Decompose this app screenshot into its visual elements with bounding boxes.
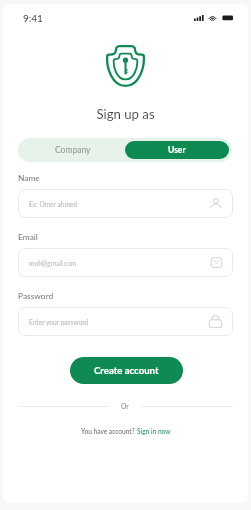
staticText: 9:41 (23, 12, 43, 24)
staticText: Name (18, 173, 40, 183)
other: Email (211, 257, 222, 268)
other: Name (210, 198, 222, 210)
button[interactable]: Company (21, 141, 125, 159)
other: Password (209, 315, 222, 328)
staticText: Create account (94, 365, 159, 377)
button[interactable]: Sign in now (137, 427, 171, 435)
staticText: Company (55, 145, 91, 155)
staticText: Sign up as (0, 106, 251, 122)
staticText: moh@gmail.com (29, 259, 77, 267)
button[interactable]: moh@gmail.com (18, 248, 233, 277)
staticText: User (168, 145, 186, 155)
staticText: You have account? (81, 427, 137, 435)
button[interactable]: Ex: Omer ahmed (18, 189, 233, 218)
button[interactable]: User (125, 141, 229, 159)
staticText: Password (18, 291, 54, 301)
staticText: Or (121, 402, 129, 410)
staticText: Ex: Omer ahmed (29, 200, 78, 208)
button[interactable]: Enter your password (18, 307, 233, 336)
button[interactable]: Create account (70, 357, 183, 384)
staticText: Enter your password (29, 318, 89, 326)
staticText: Email (18, 232, 38, 242)
staticText: Sign in now (137, 427, 171, 435)
